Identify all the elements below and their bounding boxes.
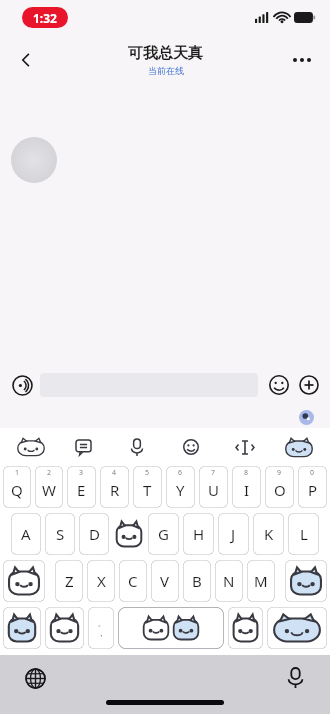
staticText: E: [77, 480, 86, 500]
staticText: S: [56, 524, 65, 544]
staticText: J: [231, 524, 236, 544]
staticText: U: [208, 480, 219, 500]
button[interactable]: Backspace: [285, 560, 327, 602]
staticText: N: [223, 571, 235, 591]
staticText: 0: [310, 468, 315, 478]
staticText: R: [110, 480, 120, 500]
button[interactable]: More options: [284, 42, 320, 78]
button[interactable]: C: [119, 560, 147, 602]
staticText: 5: [145, 468, 150, 478]
staticText: Q: [11, 480, 23, 500]
staticText: O: [274, 480, 286, 500]
button[interactable]: E: [67, 466, 96, 508]
button[interactable]: R: [100, 466, 129, 508]
button[interactable]: Emoji: [266, 372, 292, 398]
button[interactable]: Sticker suggestion: [299, 410, 314, 425]
button[interactable]: Theme: [272, 432, 326, 462]
staticText: 1: [15, 468, 20, 478]
button[interactable]: T: [133, 466, 162, 508]
button[interactable]: B: [183, 560, 211, 602]
button[interactable]: P: [298, 466, 327, 508]
button[interactable]: Voice input: [110, 432, 164, 462]
staticText: A: [21, 524, 31, 544]
button[interactable]: Switch language: [20, 663, 50, 693]
button[interactable]: Numbers: [3, 607, 41, 649]
button[interactable]: More: [296, 372, 322, 398]
button[interactable]: A: [11, 513, 41, 555]
button[interactable]: J: [218, 513, 249, 555]
button[interactable]: H: [183, 513, 214, 555]
staticText: ，: [97, 628, 105, 638]
staticText: H: [193, 524, 205, 544]
button[interactable]: Emoji keyboard: [45, 607, 84, 649]
button[interactable]: M: [247, 560, 275, 602]
staticText: I: [244, 480, 250, 500]
button[interactable]: Shift: [3, 560, 45, 602]
staticText: X: [97, 571, 106, 591]
button[interactable]: I: [232, 466, 261, 508]
button[interactable]: Emoji: [164, 432, 218, 462]
button[interactable]: Text: [57, 432, 110, 462]
staticText: T: [143, 480, 152, 500]
button[interactable]: W: [35, 466, 63, 508]
button[interactable]: Space: [118, 607, 224, 649]
button[interactable]: K: [253, 513, 284, 555]
staticText: 4: [112, 468, 117, 478]
staticText: 9: [277, 468, 282, 478]
button[interactable]: D: [79, 513, 109, 555]
staticText: D: [89, 524, 100, 544]
button[interactable]: S: [45, 513, 75, 555]
button[interactable]: L: [288, 513, 319, 555]
staticText: Y: [176, 480, 185, 500]
button[interactable]: G: [148, 513, 179, 555]
button[interactable]: U: [199, 466, 228, 508]
button[interactable]: Back: [6, 40, 46, 80]
staticText: 2: [47, 468, 52, 478]
button[interactable]: Y: [166, 466, 195, 508]
staticText: 7: [211, 468, 216, 478]
button[interactable]: Q: [3, 466, 31, 508]
button[interactable]: Cat keyboard: [4, 432, 57, 462]
button[interactable]: V: [151, 560, 179, 602]
staticText: W: [42, 480, 56, 500]
button[interactable]: Enter: [267, 607, 327, 649]
button[interactable]: Z: [55, 560, 83, 602]
button[interactable]: F key sticker: [112, 513, 145, 555]
button[interactable]: Comma: [88, 607, 114, 649]
staticText: 可我总天真: [128, 44, 203, 63]
staticText: M: [254, 571, 268, 591]
staticText: C: [128, 571, 138, 591]
button[interactable]: X: [87, 560, 115, 602]
staticText: K: [264, 524, 274, 544]
staticText: 6: [178, 468, 183, 478]
staticText: 3: [79, 468, 84, 478]
staticText: 8: [244, 468, 249, 478]
staticText: 。: [98, 619, 105, 628]
staticText: 1:32: [33, 10, 57, 26]
staticText: P: [308, 480, 318, 500]
button[interactable]: O: [265, 466, 294, 508]
staticText: B: [192, 571, 202, 591]
button[interactable]: Cursor control: [218, 432, 272, 462]
staticText: G: [158, 524, 169, 544]
staticText: Z: [65, 571, 74, 591]
staticText: V: [160, 571, 170, 591]
button[interactable]: Dictation: [280, 663, 310, 693]
button[interactable]: [11, 137, 57, 183]
button[interactable]: Period: [228, 607, 263, 649]
button[interactable]: Voice message: [8, 371, 36, 399]
button[interactable]: N: [215, 560, 243, 602]
staticText: L: [300, 524, 308, 544]
staticText: 当前在线: [148, 65, 184, 76]
